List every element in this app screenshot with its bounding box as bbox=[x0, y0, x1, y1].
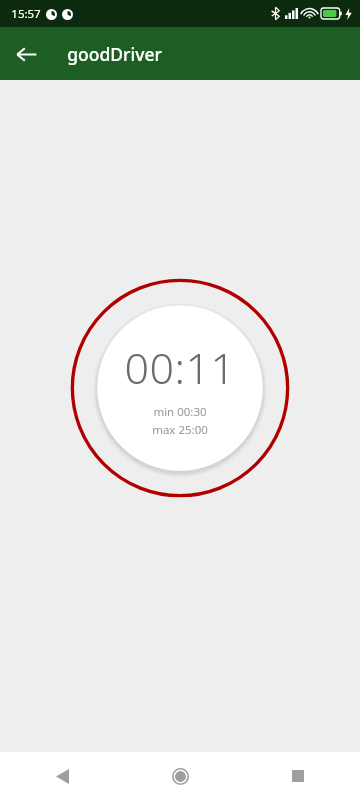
staticText: 00:11 bbox=[124, 338, 236, 397]
button[interactable]: 00:11 bbox=[65, 273, 295, 503]
staticText: 15:57 bbox=[11, 6, 41, 22]
staticText: min 00:30 bbox=[153, 404, 207, 420]
button[interactable]: Home bbox=[156, 752, 204, 800]
button[interactable]: Recent apps bbox=[274, 752, 322, 800]
button[interactable]: Back bbox=[38, 752, 86, 800]
button[interactable]: Back bbox=[6, 34, 46, 74]
staticText: goodDriver bbox=[67, 42, 162, 66]
staticText: max 25:00 bbox=[152, 422, 208, 438]
